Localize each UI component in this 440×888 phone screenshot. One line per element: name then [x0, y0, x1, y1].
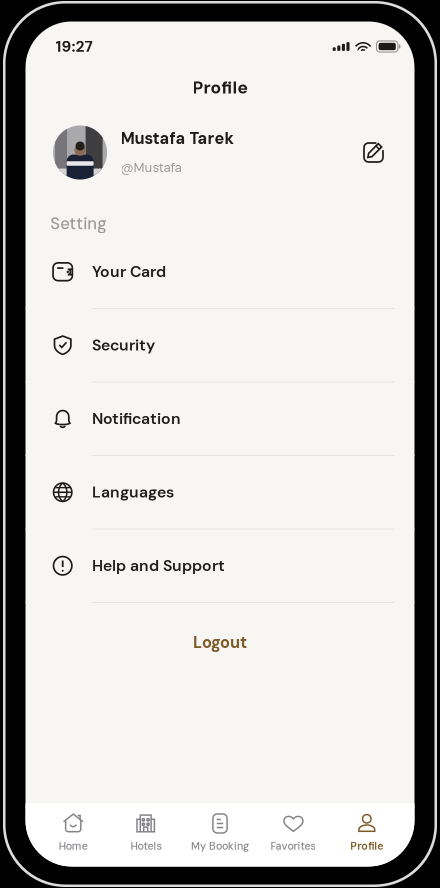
- staticText: Profile: [350, 839, 383, 853]
- staticText: Hotels: [131, 839, 163, 853]
- button[interactable]: Your Card: [25, 235, 414, 308]
- button[interactable]: Profile: [330, 813, 403, 851]
- staticText: Mustafa Tarek: [121, 128, 234, 149]
- button[interactable]: Hotels: [110, 813, 183, 851]
- staticText: Logout: [193, 632, 247, 653]
- staticText: Setting: [50, 213, 106, 234]
- button[interactable]: Security: [25, 309, 414, 381]
- button[interactable]: Languages: [25, 456, 414, 528]
- staticText: @Mustafa: [121, 159, 182, 176]
- staticText: Notification: [92, 408, 181, 429]
- button[interactable]: Help and Support: [25, 529, 414, 602]
- staticText: Your Card: [92, 261, 166, 282]
- staticText: Favorites: [270, 839, 316, 853]
- staticText: Languages: [92, 482, 174, 502]
- staticText: Security: [92, 335, 155, 355]
- button[interactable]: My Booking: [183, 813, 257, 851]
- staticText: Home: [59, 839, 88, 853]
- staticText: My Booking: [191, 839, 249, 853]
- button[interactable]: Home: [36, 813, 110, 851]
- staticText: 19:27: [55, 36, 92, 56]
- button[interactable]: Notification: [25, 382, 414, 455]
- button[interactable]: Logout: [25, 621, 414, 664]
- staticText: Help and Support: [92, 555, 225, 576]
- button[interactable]: Favorites: [257, 813, 330, 851]
- staticText: Profile: [192, 76, 247, 99]
- button[interactable]: Edit profile: [355, 134, 391, 170]
